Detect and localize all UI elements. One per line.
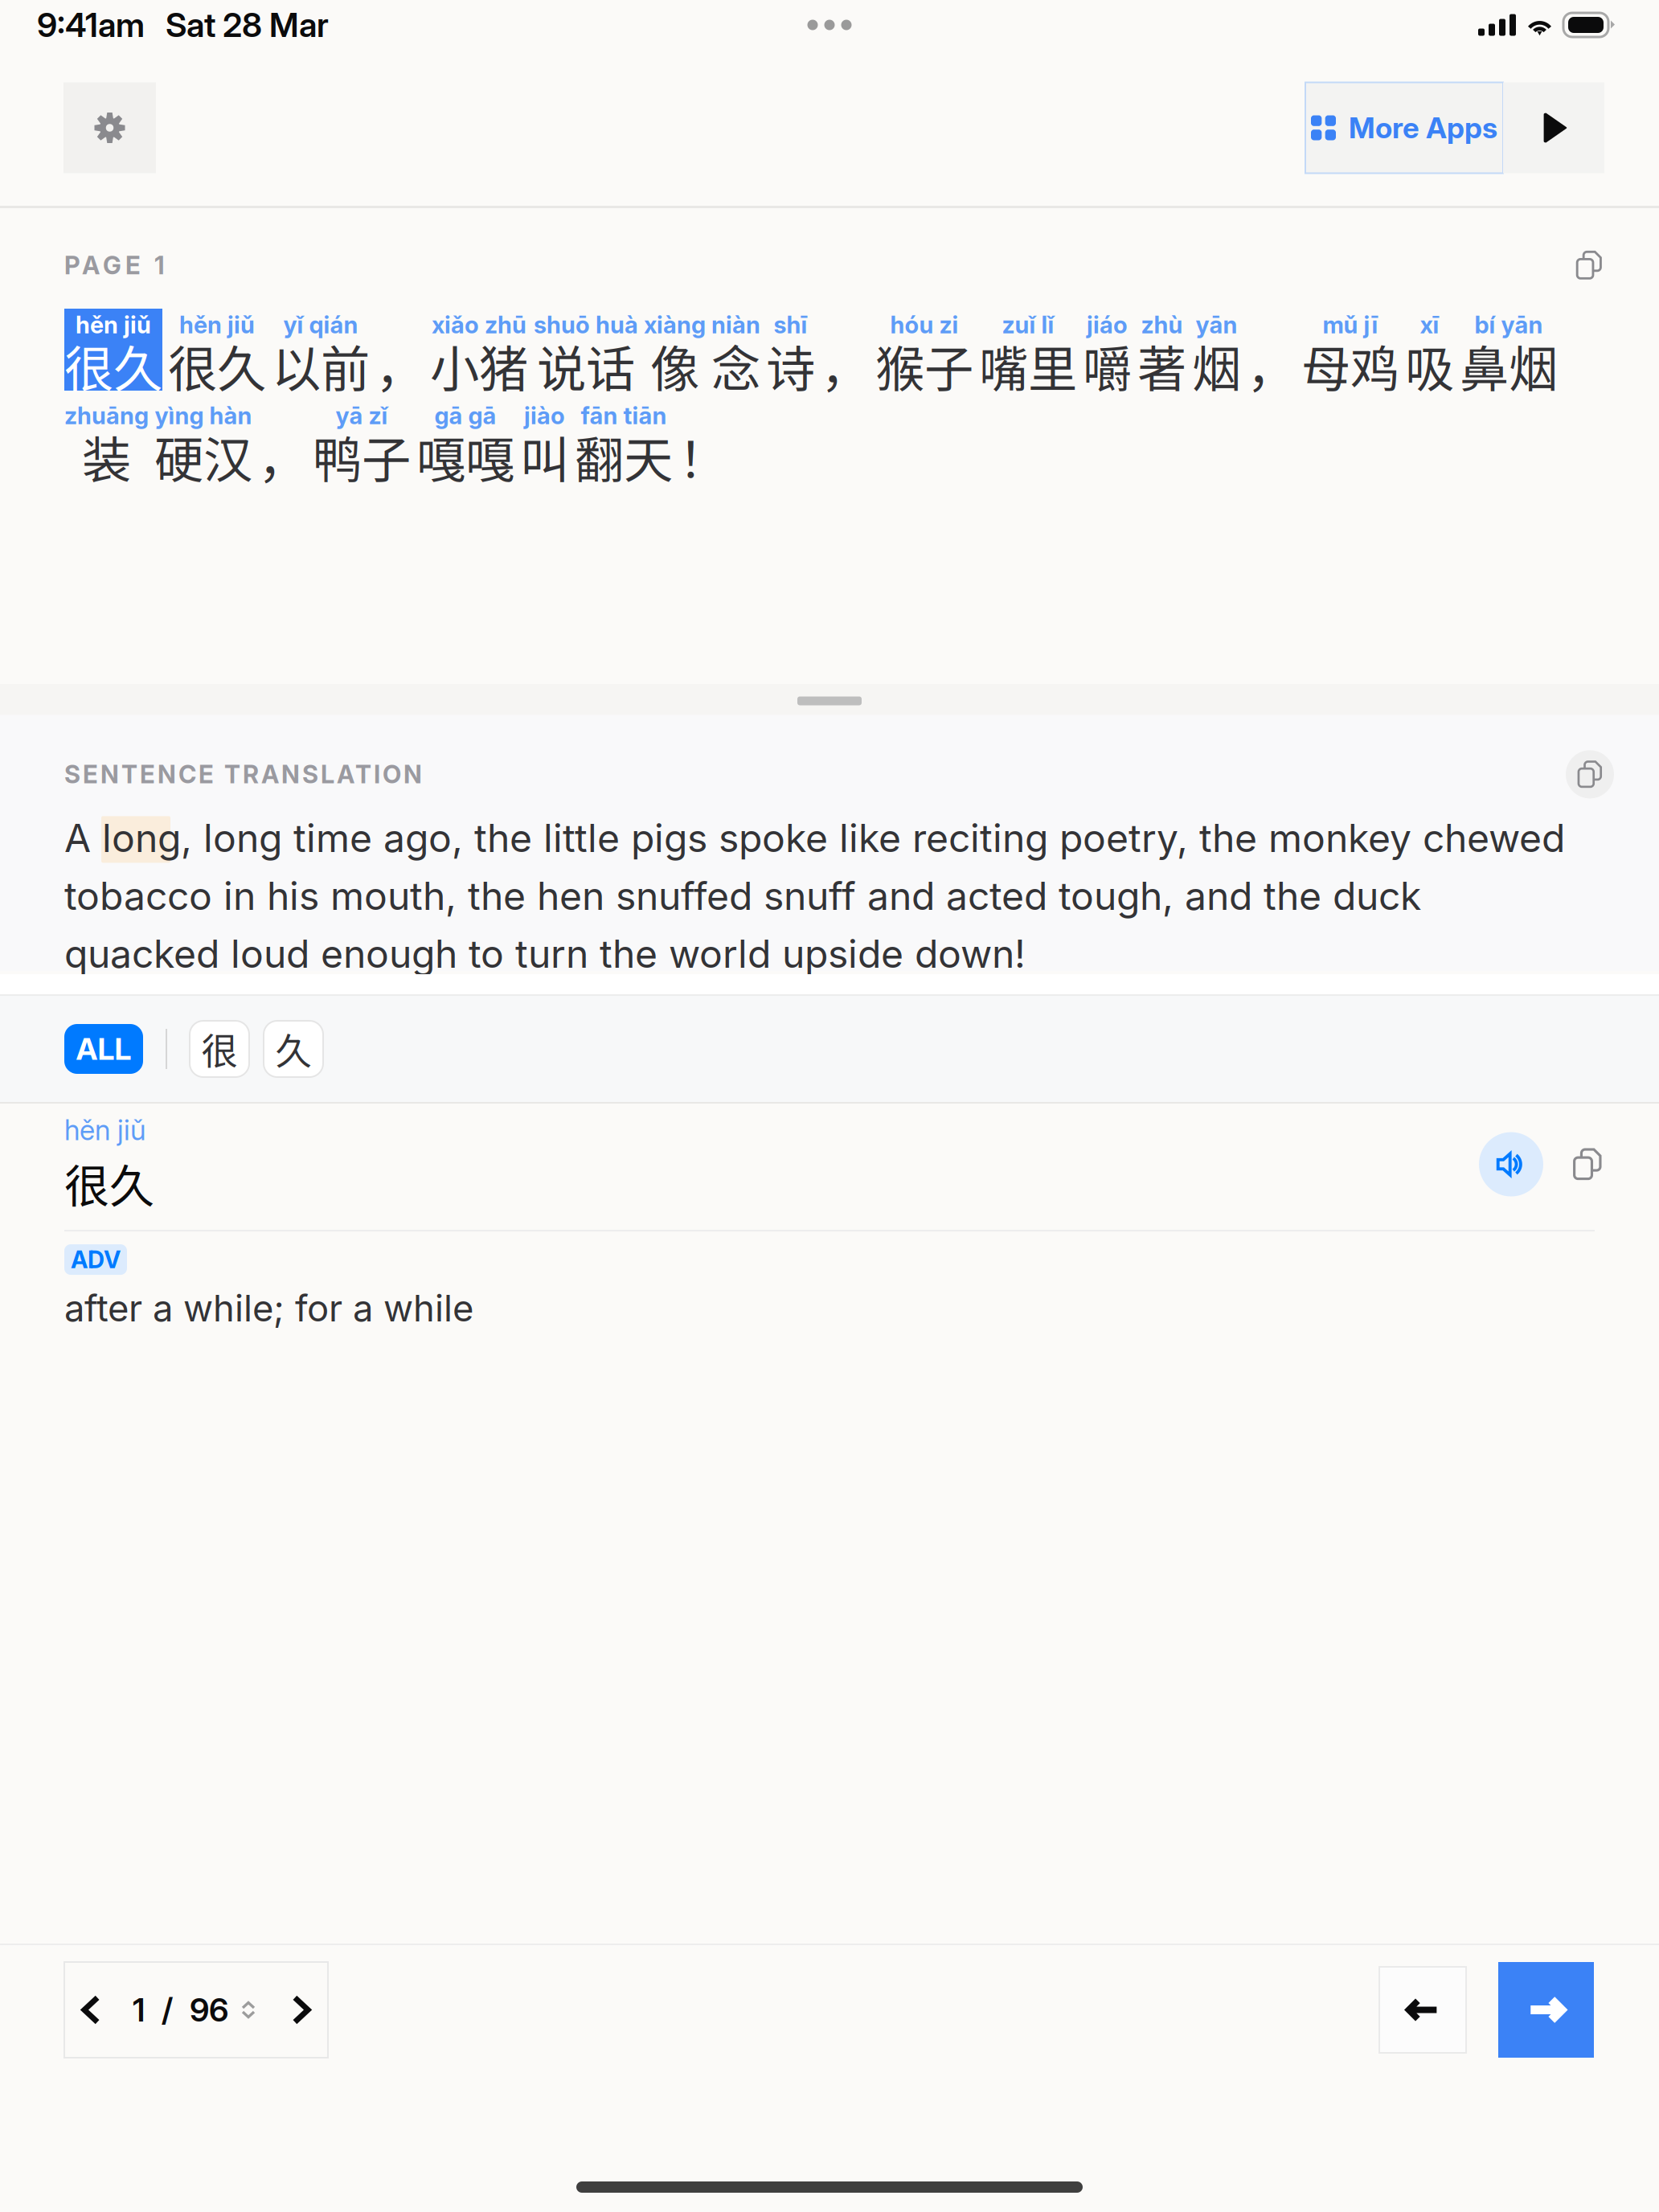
staticText: hěn jiǔ <box>76 310 151 339</box>
staticText: jiào <box>524 401 565 430</box>
staticText: 说话 <box>537 330 635 401</box>
staticText: 1 <box>133 1990 145 2029</box>
button[interactable]: ALL <box>64 1024 143 1074</box>
staticText: 嘴里 <box>979 330 1077 401</box>
staticText: hěn jiǔ <box>179 310 255 339</box>
staticText: PAGE 1 <box>64 250 165 280</box>
staticText: 母鸡 <box>1301 330 1399 401</box>
staticText: hěn jiǔ <box>64 1113 145 1147</box>
staticText: zuǐ lǐ <box>1002 310 1054 339</box>
staticText: 吸 <box>1405 330 1454 401</box>
staticText: 著 <box>1137 330 1186 401</box>
staticText: ， <box>1247 330 1296 401</box>
staticText: 装 <box>82 421 131 492</box>
staticText: xiàng <box>644 310 706 339</box>
staticText: Sat 28 Mar <box>166 5 329 45</box>
button[interactable]: Play <box>1503 82 1604 173</box>
staticText: yā zǐ <box>336 401 388 430</box>
button[interactable]: Back <box>1379 1967 1466 2053</box>
staticText: yǐ qián <box>283 310 358 339</box>
staticText: zhù <box>1141 310 1183 339</box>
staticText: 猴子 <box>875 330 973 401</box>
staticText: 小猪 <box>430 330 528 401</box>
staticText: yān <box>1196 310 1237 339</box>
button[interactable]: Copy translation <box>1566 750 1614 798</box>
staticText: 翻天 <box>575 421 673 492</box>
staticText: hóu zi <box>890 310 959 339</box>
staticText: shī <box>774 310 807 339</box>
staticText: / <box>162 1990 173 2029</box>
staticText: 烟 <box>1192 330 1241 401</box>
button[interactable]: More Apps <box>1305 82 1503 173</box>
staticText: ALL <box>76 1031 131 1067</box>
staticText: niàn <box>711 310 760 339</box>
staticText: 很久 <box>64 1150 154 1215</box>
staticText: 像 <box>650 330 699 401</box>
staticText: 嚼 <box>1083 330 1132 401</box>
staticText: mǔ jī <box>1323 310 1378 339</box>
button[interactable]: Copy word <box>1561 1138 1614 1191</box>
staticText: 硬汉 <box>154 421 252 492</box>
staticText: zhuāng <box>64 401 149 430</box>
button[interactable]: Copy sentence <box>1564 240 1614 290</box>
staticText: fān tiān <box>581 401 667 430</box>
button[interactable]: Previous page <box>60 1979 121 2040</box>
staticText: ， <box>821 330 870 401</box>
staticText: 鸭子 <box>313 421 411 492</box>
staticText: ADV <box>71 1245 121 1274</box>
staticText: 久 <box>275 1023 311 1075</box>
button[interactable]: Next page <box>271 1979 332 2040</box>
staticText: A long, long time ago, the little pigs s… <box>64 815 1565 977</box>
staticText: 鼻烟 <box>1460 330 1558 401</box>
staticText: gā gā <box>434 401 496 430</box>
staticText: 以前 <box>272 330 370 401</box>
staticText: 9:41am <box>37 5 145 45</box>
staticText: xī <box>1420 310 1439 339</box>
staticText: bí yān <box>1475 310 1543 339</box>
staticText: ， <box>375 330 424 401</box>
button[interactable]: 久 <box>264 1021 323 1077</box>
staticText: ， <box>258 421 307 492</box>
staticText: 念 <box>711 330 760 401</box>
button[interactable]: Settings <box>63 82 156 173</box>
staticText: ！ <box>678 421 727 492</box>
staticText: 诗 <box>766 330 815 401</box>
button[interactable]: 很 <box>190 1021 249 1077</box>
staticText: jiáo <box>1087 310 1128 339</box>
button[interactable]: Play pronunciation <box>1479 1132 1543 1196</box>
staticText: 叫 <box>520 421 569 492</box>
button[interactable]: Forward <box>1498 1962 1594 2058</box>
staticText: More Apps <box>1349 110 1497 145</box>
staticText: 很久 <box>168 330 266 401</box>
staticText: 很 <box>201 1023 238 1075</box>
staticText: after a while; for a while <box>64 1286 473 1330</box>
staticText: 96 <box>190 1990 228 2029</box>
staticText: SENTENCE TRANSLATION <box>64 759 422 789</box>
staticText: shuō huà <box>534 310 638 339</box>
staticText: yìng hàn <box>155 401 252 430</box>
staticText: xiǎo zhū <box>432 310 526 339</box>
staticText: 嘎嘎 <box>416 421 514 492</box>
staticText: 很久 <box>64 330 162 401</box>
